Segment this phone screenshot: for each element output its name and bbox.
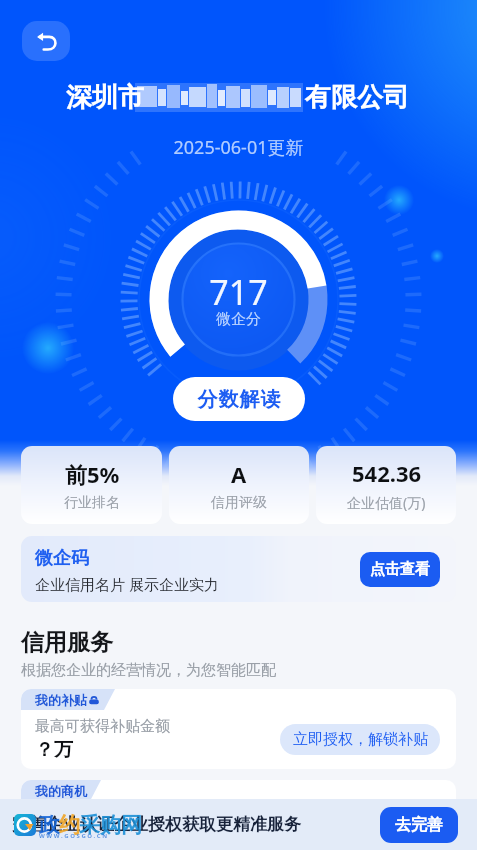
staticText: 完善企业认证企业授权获取更精准服务 bbox=[12, 814, 301, 835]
staticText: A bbox=[231, 459, 247, 489]
staticText: 信用评级 bbox=[211, 494, 267, 512]
staticText: 微企分 bbox=[0, 310, 477, 329]
staticText: 542.36 bbox=[352, 458, 422, 488]
staticText: ？万 bbox=[35, 738, 73, 762]
staticText: 约 bbox=[59, 812, 80, 838]
staticText: 根据您企业的经营情况，为您智能匹配 bbox=[21, 661, 276, 680]
staticText: 行业排名 bbox=[64, 494, 120, 512]
button[interactable]: Back bbox=[22, 21, 70, 61]
button[interactable]: 点击查看 bbox=[360, 552, 440, 587]
staticText: 最高可获得补贴金额 bbox=[35, 717, 170, 736]
staticText: 采购网 bbox=[79, 812, 142, 838]
button[interactable]: 我的商机 bbox=[21, 780, 456, 820]
button[interactable]: 分数解读 bbox=[173, 377, 305, 421]
button[interactable]: 去完善 bbox=[380, 807, 458, 843]
staticText: 有限公司 bbox=[305, 81, 409, 114]
staticText: 深圳市 bbox=[66, 81, 144, 114]
staticText: 点击查看 bbox=[370, 560, 430, 579]
staticText: 717 bbox=[0, 269, 477, 315]
staticText: 前5% bbox=[65, 459, 120, 489]
staticText: 我的商机 bbox=[35, 783, 87, 799]
button[interactable]: 前5% bbox=[21, 446, 162, 524]
staticText: 立即授权，解锁补贴 bbox=[293, 730, 428, 749]
button[interactable]: 立即授权，解锁补贴 bbox=[280, 724, 440, 755]
staticText: 2025-06-01更新 bbox=[0, 135, 477, 160]
button[interactable]: 542.36 bbox=[316, 446, 456, 524]
staticText: 分数解读 bbox=[197, 387, 281, 412]
staticText: 我的补贴 bbox=[35, 692, 87, 708]
button[interactable]: A bbox=[169, 446, 309, 524]
staticText: 信用服务 bbox=[21, 628, 113, 657]
staticText: 去完善 bbox=[395, 815, 443, 835]
staticText: 微企码 bbox=[35, 547, 89, 570]
staticText: W W W . G O S G O . C N bbox=[39, 832, 108, 840]
staticText: 企业信用名片 展示企业实力 bbox=[35, 574, 219, 594]
staticText: 政 bbox=[39, 812, 60, 838]
staticText: 企业估值(万) bbox=[347, 493, 426, 512]
button[interactable]: 我的补贴 bbox=[21, 689, 456, 769]
button[interactable]: 微企码 bbox=[21, 536, 456, 602]
